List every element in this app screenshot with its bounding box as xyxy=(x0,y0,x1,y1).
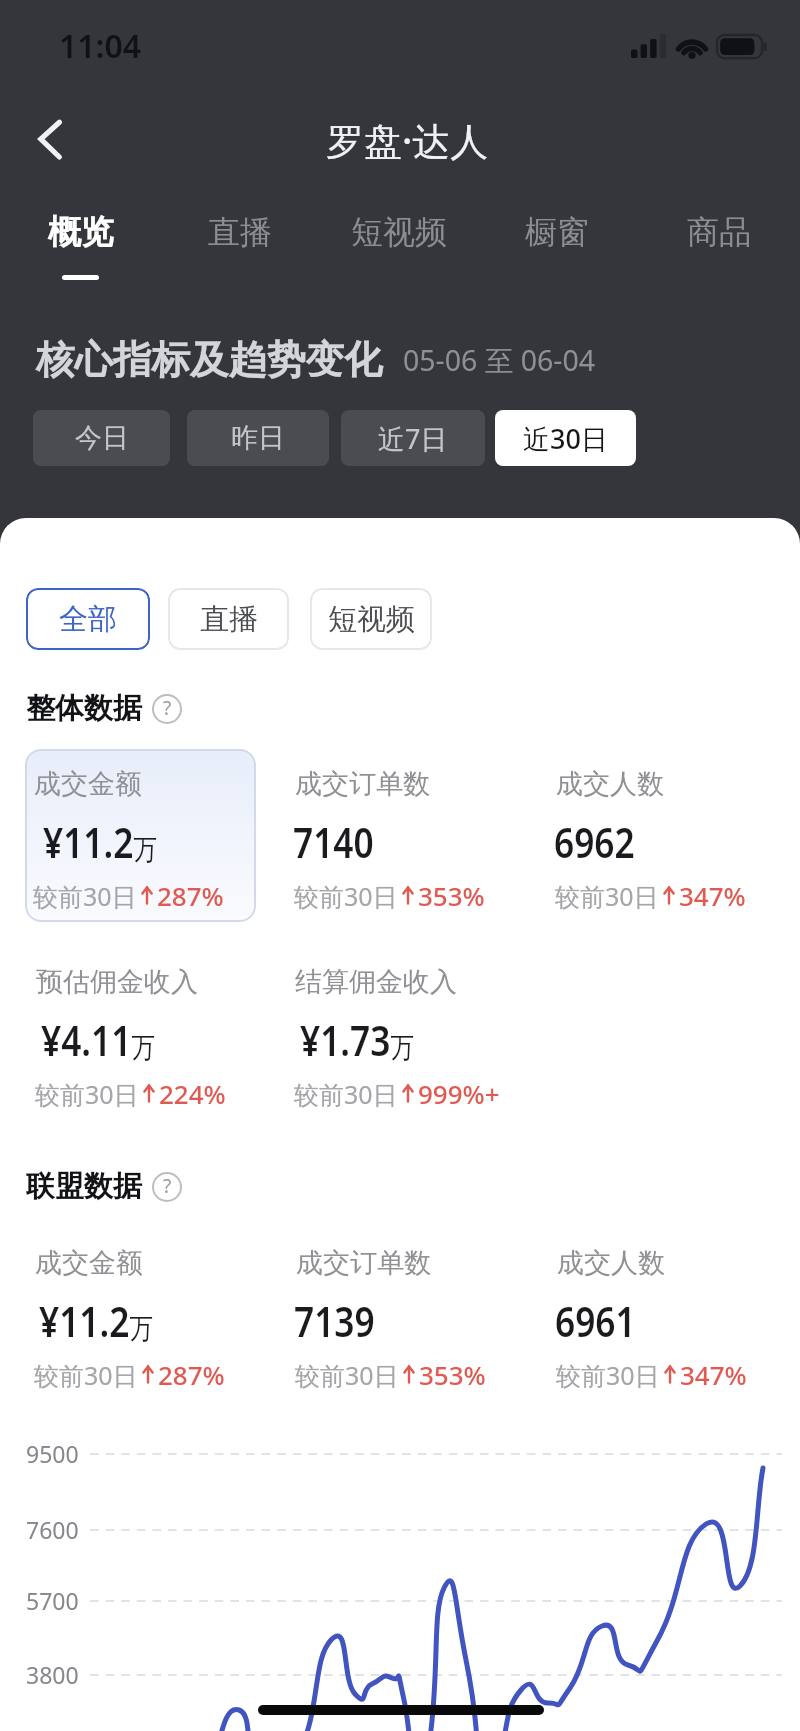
staticText: 全部 xyxy=(59,601,117,638)
staticText: ¥1.73 xyxy=(300,1011,391,1068)
staticText: ? xyxy=(163,1173,172,1199)
button[interactable]: 直播 xyxy=(204,198,276,266)
staticText: 成交订单数 xyxy=(295,767,430,801)
button[interactable]: 直播 xyxy=(168,588,289,650)
button[interactable]: 全部 xyxy=(26,588,150,650)
staticText: 6962 xyxy=(554,813,635,870)
staticText: 3800 xyxy=(26,1659,79,1690)
staticText: 7140 xyxy=(293,813,374,870)
button[interactable]: 短视频 xyxy=(310,588,432,650)
staticText: 353% xyxy=(419,1357,486,1392)
staticText: 近7日 xyxy=(378,420,448,457)
staticText: 较前30日 xyxy=(555,879,659,913)
staticText: 347% xyxy=(680,1357,747,1392)
button[interactable]: 商品 xyxy=(683,198,755,266)
staticText: 罗盘·达人 xyxy=(326,114,489,166)
staticText: 橱窗 xyxy=(525,212,589,252)
staticText: 直播 xyxy=(200,601,258,638)
staticText: 7139 xyxy=(294,1292,375,1349)
other: Help xyxy=(152,694,182,724)
staticText: 成交金额 xyxy=(35,1246,143,1280)
staticText: 万 xyxy=(391,1030,414,1065)
staticText: 万 xyxy=(130,1311,153,1346)
staticText: 万 xyxy=(132,1030,155,1065)
staticText: 结算佣金收入 xyxy=(295,965,457,999)
staticText: 7600 xyxy=(26,1514,79,1545)
staticText: 11:04 xyxy=(59,24,142,68)
staticText: 近30日 xyxy=(523,420,608,457)
staticText: 较前30日 xyxy=(294,1077,398,1111)
staticText: ¥11.2 xyxy=(43,813,134,870)
staticText: 较前30日 xyxy=(34,1358,138,1392)
staticText: 直播 xyxy=(208,212,272,252)
staticText: ? xyxy=(163,695,172,721)
staticText: 较前30日 xyxy=(295,1358,399,1392)
staticText: 成交人数 xyxy=(556,767,664,801)
staticText: 999%+ xyxy=(418,1076,500,1111)
staticText: 整体数据 xyxy=(26,690,142,727)
staticText: 短视频 xyxy=(328,601,415,638)
button[interactable]: 近30日 xyxy=(495,410,636,466)
other: Help xyxy=(152,1172,182,1202)
button[interactable]: 近7日 xyxy=(341,410,485,466)
button[interactable]: 整体数据 xyxy=(26,690,182,727)
staticText: 5700 xyxy=(26,1585,79,1616)
staticText: 成交订单数 xyxy=(296,1246,431,1280)
button[interactable]: 联盟数据 xyxy=(26,1168,182,1205)
staticText: 353% xyxy=(418,878,485,913)
staticText: 05-06 至 06-04 xyxy=(403,341,596,380)
staticText: 预估佣金收入 xyxy=(36,965,198,999)
staticText: 商品 xyxy=(687,212,751,252)
staticText: 347% xyxy=(679,878,746,913)
button[interactable] xyxy=(25,749,256,922)
staticText: 概览 xyxy=(48,211,114,253)
staticText: 万 xyxy=(134,832,157,867)
staticText: 224% xyxy=(159,1076,226,1111)
staticText: 核心指标及趋势变化 xyxy=(36,336,383,385)
staticText: 联盟数据 xyxy=(26,1168,142,1205)
staticText: 今日 xyxy=(75,421,129,455)
staticText: 短视频 xyxy=(351,212,447,252)
staticText: 成交金额 xyxy=(34,767,142,801)
staticText: 较前30日 xyxy=(33,879,137,913)
staticText: 9500 xyxy=(26,1438,79,1469)
button[interactable]: 今日 xyxy=(33,410,170,466)
staticText: 287% xyxy=(157,878,224,913)
staticText: 6961 xyxy=(555,1292,636,1349)
button[interactable]: Back xyxy=(18,110,78,168)
staticText: 较前30日 xyxy=(35,1077,139,1111)
staticText: 较前30日 xyxy=(294,879,398,913)
staticText: ¥11.2 xyxy=(39,1292,130,1349)
staticText: 较前30日 xyxy=(556,1358,660,1392)
button[interactable]: 昨日 xyxy=(187,410,329,466)
staticText: 昨日 xyxy=(231,421,285,455)
button[interactable]: 橱窗 xyxy=(521,198,593,266)
button[interactable]: 短视频 xyxy=(347,198,451,266)
staticText: ¥4.11 xyxy=(41,1011,132,1068)
button[interactable]: 概览 xyxy=(44,197,118,267)
staticText: 287% xyxy=(158,1357,225,1392)
staticText: 成交人数 xyxy=(557,1246,665,1280)
